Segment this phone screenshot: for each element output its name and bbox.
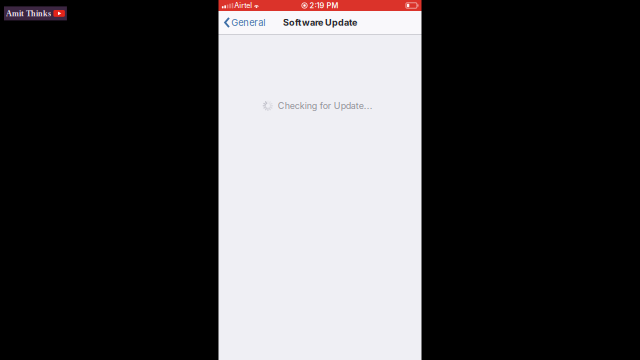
staticText: Checking for Update... xyxy=(278,100,373,111)
staticText: Software Update xyxy=(283,17,357,28)
button[interactable]: General xyxy=(218,11,269,34)
staticText: 2:19 PM xyxy=(309,1,338,10)
staticText: Amit Thinks xyxy=(6,9,51,18)
staticText: General xyxy=(231,17,265,28)
staticText: Airtel xyxy=(234,1,252,10)
